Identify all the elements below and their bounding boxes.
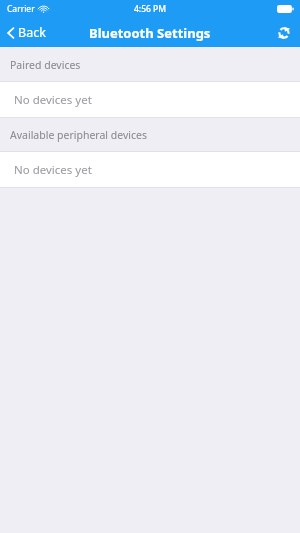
staticText: Back — [18, 24, 46, 41]
button[interactable]: Refresh — [268, 18, 300, 47]
button[interactable]: No devices yet — [0, 152, 300, 188]
staticText: Bluetooth Settings — [89, 24, 211, 42]
staticText: No devices yet — [14, 92, 92, 108]
button[interactable]: Back — [0, 18, 54, 47]
staticText: Available peripheral devices — [10, 128, 148, 142]
staticText: Paired devices — [10, 58, 81, 72]
staticText: No devices yet — [14, 162, 92, 178]
staticText: Carrier — [7, 3, 35, 15]
button[interactable]: No devices yet — [0, 82, 300, 118]
staticText: 4:56 PM — [134, 3, 167, 15]
